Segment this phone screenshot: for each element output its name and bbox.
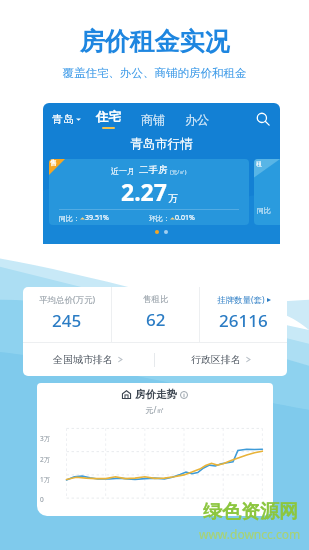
staticText: 同比 [257,206,271,215]
staticText: 绿色资源网 [203,500,298,524]
button[interactable]: 租 [254,159,280,225]
button[interactable]: 售 [49,159,249,225]
staticText: 同比： [59,214,80,223]
staticText: 二手房 [139,164,168,176]
staticText: www.downcc.com [199,526,301,542]
button[interactable]: 售租比 [112,287,199,342]
button[interactable]: 商铺 [138,112,168,127]
staticText: 行政区排名 [191,353,241,366]
staticText: 平均总价(万元) [39,294,96,306]
staticText: 售租比 [143,294,169,305]
staticText: 环比： [149,214,170,223]
staticText: 住宅 [96,109,121,125]
staticText: 挂牌数量(套) [217,294,265,306]
staticText: 青岛 [52,112,74,126]
staticText: 租 [256,160,262,168]
staticText: 覆盖住宅、办公、商铺的房价和租金 [0,66,309,80]
button[interactable]: 住宅 [93,109,124,129]
staticText: 62 [146,308,166,331]
button[interactable]: 挂牌数量(套) [200,287,287,342]
staticText: 元/㎡ [37,404,273,415]
button[interactable]: 平均总价(万元) [23,287,111,342]
staticText: 全国城市排名 [53,353,113,366]
staticText: 2万 [40,455,51,464]
staticText: 0 [40,495,44,504]
button[interactable]: 办公 [182,112,212,127]
staticText: 3万 [40,434,51,443]
button[interactable]: 行政区排名 [155,343,287,376]
staticText: 青岛市行情 [43,136,280,152]
staticText: 房价走势 [135,388,177,401]
staticText: 26116 [219,309,268,332]
button[interactable]: 青岛 [50,110,83,128]
staticText: 1万 [40,475,51,484]
staticText: 2.27 [121,176,167,207]
staticText: 0.01% [175,213,195,223]
staticText: 售 [50,159,57,167]
button[interactable]: 全国城市排名 [23,343,154,376]
staticText: 39.51% [85,213,109,223]
staticText: 万 [168,192,178,205]
staticText: 房价租金实况 [0,26,309,57]
staticText: (元/㎡) [170,168,187,176]
staticText: 245 [52,309,82,332]
button[interactable]: Search [253,109,273,129]
staticText: 近一月 [111,166,135,176]
